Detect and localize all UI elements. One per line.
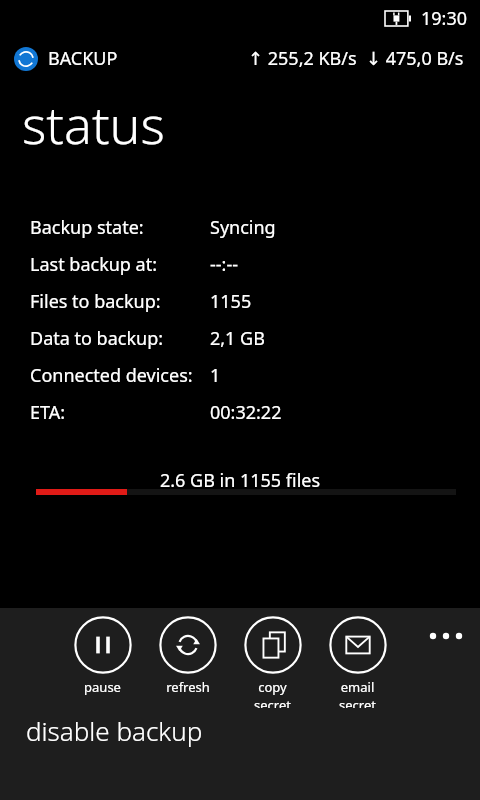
staticText: Last backup at: [30,252,158,277]
staticText: 00:32:22 [210,400,282,425]
button[interactable]: refresh [155,616,220,696]
staticText: email secret [325,678,390,708]
staticText: BACKUP [48,46,118,71]
button[interactable]: disable backup [0,700,480,760]
button[interactable]: pause [70,616,135,696]
button[interactable]: email secret [325,616,390,708]
staticText: Syncing [210,215,276,240]
staticText: refresh [166,678,210,696]
staticText: 2,1 GB [210,326,265,351]
button[interactable]: copy secret [240,616,305,708]
staticText: 1 [210,363,221,388]
button[interactable]: More options [422,612,470,660]
staticText: pause [84,678,121,696]
staticText: ETA: [30,400,66,425]
staticText: Data to backup: [30,326,164,351]
staticText: 19:30 [421,6,468,31]
staticText: 2.6 GB in 1155 files [0,468,480,493]
staticText: disable backup [26,713,203,748]
staticText: Backup state: [30,215,144,240]
staticText: 1155 [210,289,252,314]
staticText: Files to backup: [30,289,161,314]
staticText: copy secret [240,678,305,708]
staticText: status [22,88,165,159]
staticText: ↑ 255,2 KB/s ↓ 475,0 B/s [248,46,464,71]
staticText: --:-- [210,252,239,277]
staticText: Connected devices: [30,363,193,388]
